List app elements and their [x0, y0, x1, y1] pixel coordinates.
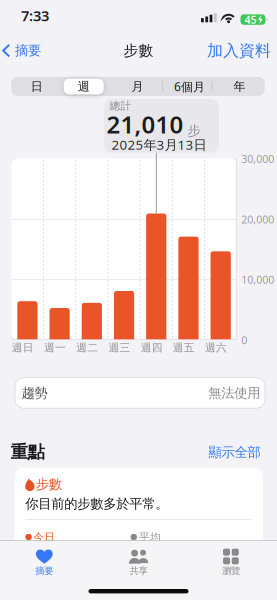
staticText: 步數	[123, 42, 153, 60]
staticText: 週二	[76, 341, 98, 354]
staticText: 顯示全部	[208, 444, 260, 460]
staticText: 0	[241, 333, 247, 347]
staticText: 週日	[12, 341, 34, 354]
button[interactable]: 瀏覽	[191, 540, 271, 584]
staticText: 重點	[10, 441, 44, 463]
staticText: 平均	[139, 531, 161, 544]
staticText: 21,010	[106, 108, 183, 140]
button[interactable]: 步數	[0, 0, 277, 600]
staticText: 6個月	[174, 78, 205, 94]
staticText: 趨勢	[21, 385, 47, 401]
staticText: 20,000	[241, 212, 274, 226]
staticText: 總計	[109, 99, 131, 112]
staticText: 摘要	[35, 565, 53, 577]
button[interactable]: 年	[216, 77, 262, 96]
staticText: 共享	[129, 565, 147, 577]
staticText: 2025年3月13日	[111, 136, 206, 153]
staticText: 週六	[205, 341, 227, 354]
staticText: 週五	[173, 341, 195, 354]
button[interactable]: 月	[114, 77, 160, 96]
staticText: 加入資料	[207, 41, 271, 60]
staticText: 週三	[108, 341, 130, 354]
button[interactable]: 日	[14, 77, 60, 96]
staticText: 步數	[36, 476, 62, 492]
button[interactable]: 顯示全部	[180, 444, 260, 460]
staticText: 週	[78, 79, 90, 94]
staticText: 今日	[33, 531, 55, 544]
staticText: 45	[244, 12, 256, 27]
staticText: 年	[233, 79, 245, 94]
button[interactable]: 加入資料	[207, 41, 271, 60]
button[interactable]: 週	[61, 77, 107, 96]
staticText: 無法使用	[208, 385, 260, 401]
button[interactable]: 摘要	[4, 540, 84, 584]
button[interactable]: 共享	[98, 540, 178, 584]
staticText: 你目前的步數多於平常。	[25, 496, 168, 512]
staticText: 瀏覽	[222, 565, 240, 577]
staticText: 7:33	[21, 6, 49, 25]
staticText: 月	[131, 79, 143, 94]
staticText: 日	[31, 79, 43, 94]
button[interactable]: 摘要	[2, 42, 41, 59]
staticText: 摘要	[15, 42, 41, 59]
staticText: 步	[187, 123, 200, 139]
button[interactable]: 趨勢	[14, 377, 265, 409]
staticText: 10,000	[241, 272, 274, 287]
staticText: 週一	[44, 341, 66, 354]
staticText: 30,000	[241, 152, 274, 166]
staticText: 週四	[141, 341, 163, 354]
button[interactable]: 6個月	[166, 77, 212, 96]
